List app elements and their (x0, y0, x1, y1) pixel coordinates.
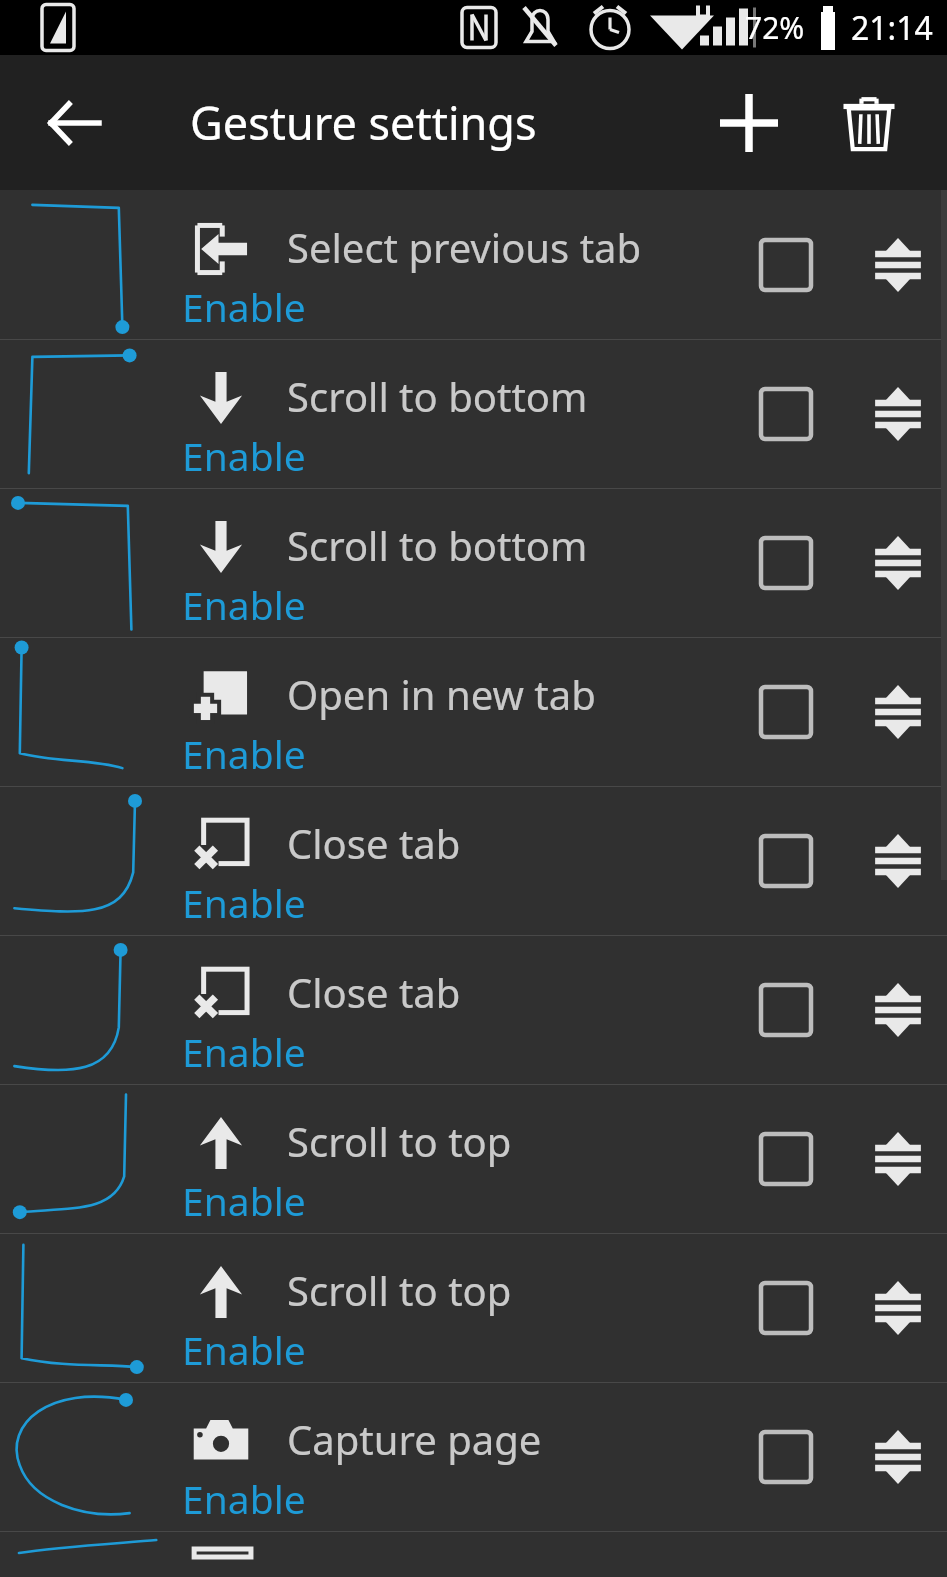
button[interactable]: Delete (823, 77, 915, 169)
button[interactable]: Reorder (863, 379, 933, 449)
staticText: Enable (182, 727, 306, 780)
button[interactable]: Select previous tab (0, 190, 947, 339)
staticText: Enable (182, 429, 306, 482)
staticText: Close tab (287, 965, 461, 1019)
staticText: Open in new tab (287, 667, 596, 721)
button[interactable]: Reorder (863, 677, 933, 747)
staticText: Scroll to top (287, 1263, 512, 1317)
button[interactable]: Scroll to top (0, 1233, 947, 1382)
button[interactable]: Open in new tab (0, 637, 947, 786)
staticText: Enable (182, 1472, 306, 1525)
button[interactable]: Scroll to bottom (0, 339, 947, 488)
staticText: Enable (182, 1174, 306, 1227)
button[interactable]: Reorder (863, 230, 933, 300)
button[interactable]: Enable (182, 1174, 306, 1227)
button[interactable]: Capture page (0, 1382, 947, 1531)
button[interactable]: Add gesture (703, 77, 795, 169)
staticText: Enable (182, 1025, 306, 1078)
staticText: Close tab (287, 816, 461, 870)
button[interactable]: Enable (182, 727, 306, 780)
button[interactable]: Scroll to top (0, 1084, 947, 1233)
button[interactable]: Reorder (863, 975, 933, 1045)
button[interactable]: Enable (182, 1323, 306, 1376)
button[interactable]: Close tab (0, 935, 947, 1084)
staticText: 72% (745, 7, 805, 48)
staticText: Enable (182, 876, 306, 929)
button[interactable]: Reorder (863, 1273, 933, 1343)
button[interactable]: Select gesture (752, 529, 820, 597)
staticText: Gesture settings (190, 92, 537, 153)
button[interactable]: Enable (182, 876, 306, 929)
button[interactable]: Select gesture (752, 1274, 820, 1342)
button[interactable]: Reorder (863, 1124, 933, 1194)
button[interactable]: Reorder (863, 826, 933, 896)
button[interactable]: Select gesture (752, 678, 820, 746)
button[interactable]: Enable (182, 280, 306, 333)
staticText: Enable (182, 280, 306, 333)
button[interactable]: Select gesture (752, 1423, 820, 1491)
button[interactable]: Close tab (0, 786, 947, 935)
button[interactable]: Select gesture (752, 231, 820, 299)
staticText: Scroll to top (287, 1114, 512, 1168)
button[interactable]: Back (30, 79, 118, 167)
staticText: Enable (182, 578, 306, 631)
button[interactable]: Enable (182, 1472, 306, 1525)
button[interactable]: Select gesture (752, 380, 820, 448)
button[interactable]: Select gesture (752, 1125, 820, 1193)
staticText: 21:14 (851, 6, 933, 50)
button[interactable]: Reorder (863, 1422, 933, 1492)
staticText: Enable (182, 1323, 306, 1376)
staticText: Select previous tab (287, 220, 642, 274)
button[interactable]: Scroll to bottom (0, 488, 947, 637)
staticText: Capture page (287, 1412, 542, 1466)
button[interactable]: Select gesture (752, 976, 820, 1044)
button[interactable]: Enable (182, 578, 306, 631)
staticText: Scroll to bottom (287, 369, 588, 423)
button[interactable]: Enable (182, 1025, 306, 1078)
button[interactable]: Reorder (863, 528, 933, 598)
button[interactable]: Enable (182, 429, 306, 482)
staticText: Scroll to bottom (287, 518, 588, 572)
button[interactable]: Select gesture (752, 827, 820, 895)
